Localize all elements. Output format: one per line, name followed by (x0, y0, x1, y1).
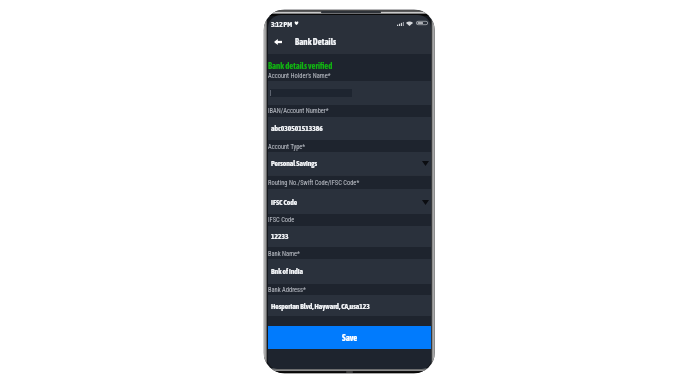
staticText: Hesperian Blvd, Hayward, CA,usa123 (271, 302, 370, 311)
button[interactable]: Back (269, 33, 287, 51)
staticText: Personal Savings (271, 159, 318, 168)
staticText: abc030501513386 (271, 124, 323, 133)
staticText: Routing No./Swift Code/IFSC Code* (268, 179, 360, 187)
staticText: Account Type* (268, 143, 306, 151)
staticText: Bank Name* (268, 250, 300, 258)
button[interactable]: abc030501513386 (268, 117, 431, 140)
staticText: 12233 (271, 232, 289, 241)
staticText: IFSC Code (268, 216, 295, 224)
staticText: Account Holder's Name* (268, 72, 331, 80)
button[interactable]: Account holder name field (270, 89, 352, 97)
staticText: IFSC Code (271, 198, 298, 207)
button[interactable]: IFSC Code (268, 189, 431, 215)
button[interactable]: Personal Savings (268, 152, 431, 175)
staticText: Bank Address* (268, 286, 306, 294)
button[interactable]: Bnk of india (268, 259, 431, 284)
staticText: IBAN/Account Number* (268, 107, 329, 115)
staticText: Bnk of india (271, 267, 304, 276)
staticText: Save (342, 333, 358, 343)
staticText: 3:12 PM (271, 20, 293, 28)
button[interactable]: Hesperian Blvd, Hayward, CA,usa123 (268, 295, 431, 317)
button[interactable]: Save (268, 326, 431, 349)
staticText: Bank Details (295, 37, 337, 47)
button[interactable]: 12233 (268, 226, 431, 247)
staticText: Bank details verified (268, 61, 333, 71)
